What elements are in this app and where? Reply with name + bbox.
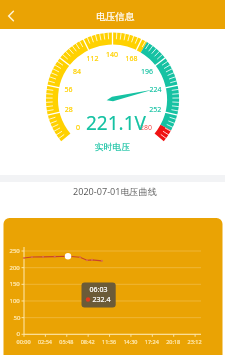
staticText: 实时电压	[95, 142, 131, 153]
staticText: 221.1V	[86, 110, 146, 136]
button[interactable]: Back	[0, 3, 24, 27]
staticText: 2020-07-01电压曲线	[73, 185, 157, 197]
staticText: 电压信息	[96, 11, 135, 23]
